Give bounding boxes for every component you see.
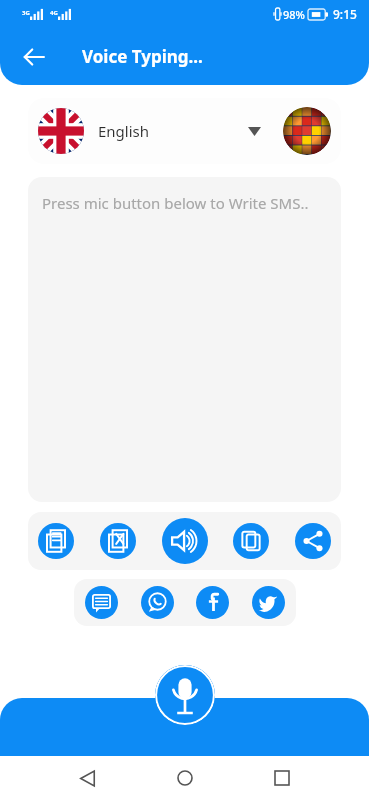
button[interactable]: Back bbox=[12, 35, 56, 79]
button[interactable]: Share text bbox=[295, 523, 331, 559]
button[interactable]: Choose language bbox=[283, 107, 331, 155]
staticText: 3G bbox=[22, 9, 30, 17]
button[interactable]: Back bbox=[70, 761, 104, 795]
button[interactable]: Copy text bbox=[233, 523, 269, 559]
button[interactable]: Save as document bbox=[38, 523, 74, 559]
button[interactable]: Save as Excel bbox=[100, 523, 136, 559]
button[interactable]: Share on Facebook bbox=[196, 586, 229, 619]
button[interactable]: Recent apps bbox=[265, 761, 299, 795]
staticText: 98% bbox=[283, 7, 305, 22]
button[interactable]: Home bbox=[168, 761, 202, 795]
button[interactable]: English bbox=[28, 98, 341, 164]
button[interactable]: Share on WhatsApp bbox=[141, 586, 174, 619]
button[interactable]: Press mic button below to Write SMS.. bbox=[28, 177, 341, 502]
staticText: 9:15 bbox=[333, 6, 357, 22]
staticText: 4G bbox=[50, 9, 58, 17]
button[interactable]: Send SMS bbox=[85, 586, 118, 619]
button[interactable]: Share on Twitter bbox=[252, 586, 285, 619]
staticText: Voice Typing... bbox=[82, 45, 203, 68]
button[interactable]: Speak text bbox=[162, 518, 208, 564]
staticText: Press mic button below to Write SMS.. bbox=[42, 193, 309, 213]
staticText: English bbox=[98, 121, 150, 141]
button[interactable]: Start voice typing bbox=[155, 665, 215, 725]
